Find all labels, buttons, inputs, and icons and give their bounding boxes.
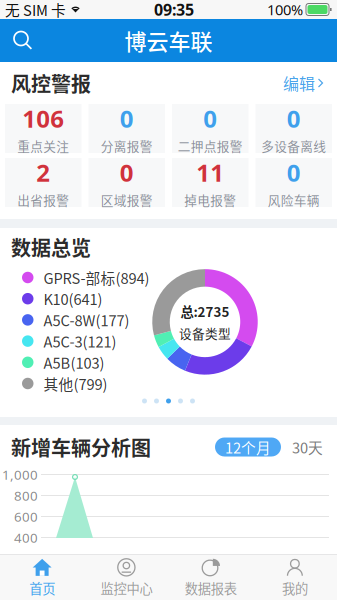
- button[interactable]: 编辑: [281, 67, 326, 99]
- button[interactable]: 30天: [289, 437, 326, 456]
- staticText: 首页: [29, 578, 55, 598]
- staticText: 106: [22, 102, 64, 135]
- staticText: 编辑: [283, 71, 315, 95]
- staticText: 数据报表: [185, 578, 237, 598]
- button[interactable]: 0: [88, 104, 165, 153]
- staticText: 出省报警: [17, 191, 69, 209]
- staticText: 400: [14, 528, 38, 547]
- staticText: 区域报警: [101, 191, 153, 209]
- staticText: 0: [120, 156, 134, 189]
- staticText: 12个月: [225, 436, 271, 458]
- staticText: 11: [196, 156, 224, 189]
- staticText: K10(641): [43, 288, 102, 309]
- staticText: 2: [36, 156, 50, 189]
- staticText: 其他(799): [43, 373, 107, 394]
- staticText: 0: [203, 102, 217, 135]
- staticText: A5B(103): [43, 352, 104, 373]
- staticText: 09:35: [154, 0, 194, 20]
- button[interactable]: 11: [172, 158, 248, 207]
- staticText: 0: [287, 156, 301, 189]
- staticText: 新增车辆分析图: [11, 432, 151, 461]
- staticText: 800: [14, 486, 38, 505]
- staticText: 无 SIM 卡: [5, 0, 66, 20]
- staticText: 1,000: [2, 465, 38, 484]
- button[interactable]: 监控中心: [84, 555, 168, 600]
- staticText: 设备类型: [179, 324, 231, 342]
- staticText: 600: [14, 507, 38, 526]
- staticText: 分离报警: [101, 137, 153, 155]
- button[interactable]: Search: [0, 19, 43, 62]
- staticText: 多设备离线: [261, 137, 326, 155]
- button[interactable]: 0: [88, 158, 165, 207]
- staticText: 风险车辆: [268, 191, 320, 209]
- staticText: 30天: [292, 436, 323, 458]
- staticText: 总:2735: [180, 302, 229, 321]
- button[interactable]: 2: [5, 158, 81, 207]
- button[interactable]: 12个月: [215, 437, 281, 456]
- button[interactable]: 106: [5, 104, 81, 153]
- staticText: 二押点报警: [178, 137, 243, 155]
- staticText: 100%: [267, 0, 303, 19]
- staticText: 我的: [282, 578, 308, 598]
- button[interactable]: 0: [255, 158, 332, 207]
- button[interactable]: 0: [172, 104, 248, 153]
- staticText: GPRS-部标(894): [43, 267, 149, 288]
- button[interactable]: 我的: [253, 555, 337, 600]
- button[interactable]: 数据报表: [168, 555, 253, 600]
- staticText: 数据总览: [11, 232, 91, 261]
- staticText: A5C-3(121): [43, 330, 116, 352]
- button[interactable]: 首页: [0, 555, 84, 600]
- staticText: 0: [120, 102, 134, 135]
- staticText: A5C-8W(177): [43, 309, 129, 330]
- staticText: 重点关注: [17, 137, 69, 155]
- staticText: 博云车联: [124, 25, 212, 56]
- staticText: 监控中心: [100, 578, 152, 598]
- button[interactable]: 0: [255, 104, 332, 153]
- staticText: 0: [287, 102, 301, 135]
- staticText: 掉电报警: [184, 191, 236, 209]
- staticText: 风控警报: [11, 68, 91, 97]
